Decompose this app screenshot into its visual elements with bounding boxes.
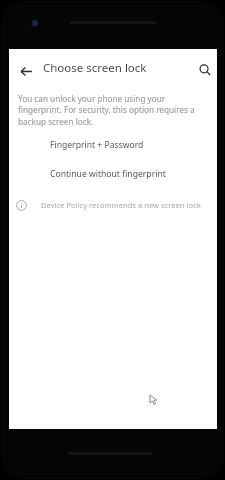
button[interactable]: Search — [195, 60, 215, 80]
staticText: Device Policy recommends a new screen lo… — [41, 200, 201, 210]
button[interactable]: Continue without fingerprint — [9, 166, 217, 182]
staticText: You can unlock your phone using your fin… — [18, 93, 205, 128]
staticText: Continue without fingerprint — [50, 168, 166, 180]
staticText: Fingerprint + Password — [50, 139, 144, 151]
button[interactable]: Fingerprint + Password — [9, 137, 217, 153]
button[interactable]: Back — [15, 60, 37, 82]
button[interactable]: Device Policy recommends a new screen lo… — [9, 195, 217, 215]
staticText: Choose screen lock — [43, 60, 147, 76]
